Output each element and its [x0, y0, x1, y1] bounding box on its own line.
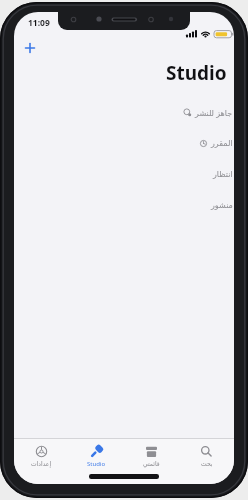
staticText: منشور: [211, 201, 233, 210]
staticText: إعدادات: [31, 460, 52, 467]
staticText: Studio: [87, 460, 106, 468]
staticText: المقرر: [211, 139, 233, 148]
button[interactable]: قائمتي: [124, 444, 179, 467]
button[interactable]: Studio: [69, 444, 124, 468]
button[interactable]: [22, 40, 38, 56]
button[interactable]: المقرر: [14, 137, 234, 149]
staticText: انتظار: [213, 170, 233, 179]
button[interactable]: بحث: [179, 444, 234, 467]
staticText: Studio: [166, 60, 227, 86]
staticText: قائمتي: [143, 460, 160, 467]
button[interactable]: منشور: [14, 199, 234, 211]
button[interactable]: إعدادات: [14, 444, 69, 467]
button[interactable]: انتظار: [14, 168, 234, 180]
staticText: بحث: [201, 460, 213, 467]
staticText: 11:09: [28, 17, 50, 29]
staticText: جاهز للنشر: [195, 107, 233, 118]
button[interactable]: جاهز للنشر: [14, 106, 234, 118]
